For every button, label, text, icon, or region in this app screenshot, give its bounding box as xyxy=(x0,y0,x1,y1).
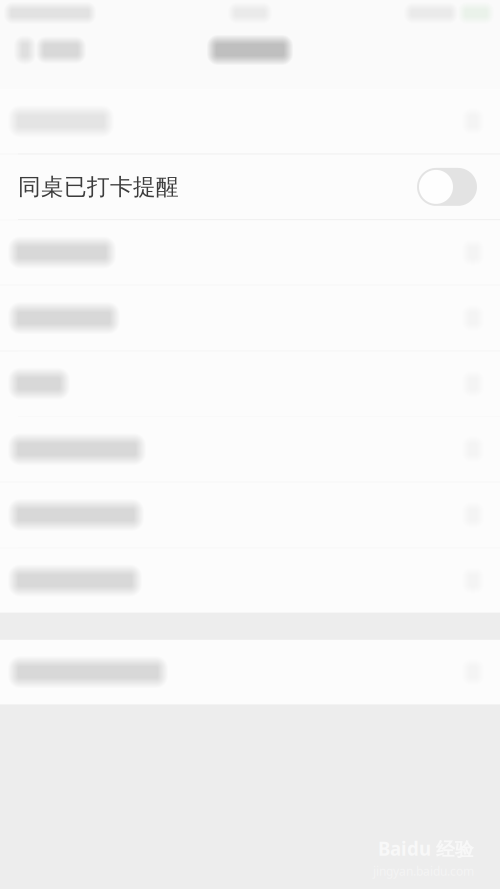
button[interactable]: Setting xyxy=(0,548,500,613)
staticText: 同桌已打卡提醒 xyxy=(18,173,179,201)
staticText: Baidu 经验 xyxy=(378,836,474,861)
button[interactable]: Setting xyxy=(0,351,500,416)
button[interactable]: Setting xyxy=(0,286,500,350)
button[interactable]: Setting xyxy=(0,220,500,285)
button[interactable]: Setting xyxy=(0,89,500,154)
button[interactable]: Back xyxy=(0,26,92,74)
button[interactable]: Setting xyxy=(0,640,500,704)
button[interactable]: 同桌已打卡提醒 xyxy=(0,155,500,219)
button[interactable]: Setting xyxy=(0,417,500,482)
button[interactable]: Setting xyxy=(0,483,500,547)
